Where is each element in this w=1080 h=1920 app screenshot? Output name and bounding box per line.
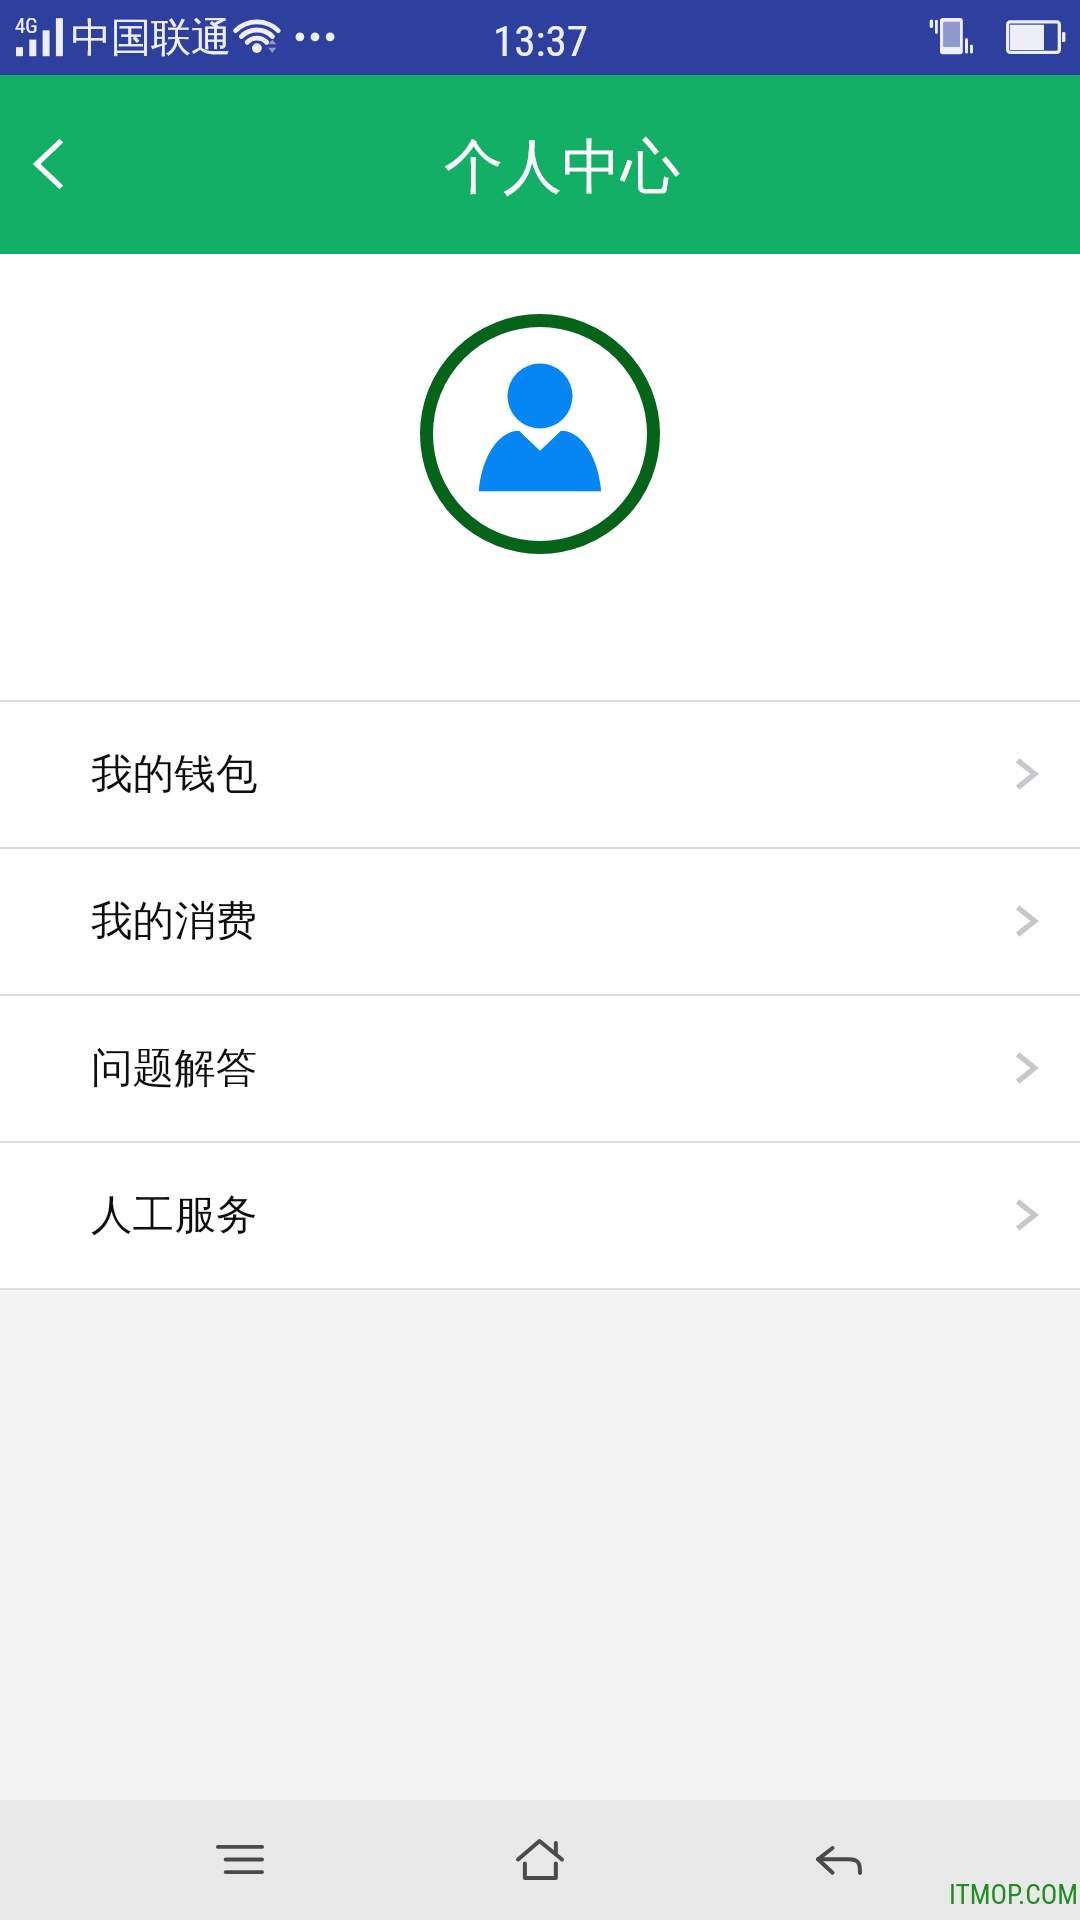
button[interactable]: 我的消费 <box>0 849 1080 994</box>
staticText: 我的消费 <box>91 895 258 947</box>
staticText: 个人中心 <box>444 130 680 204</box>
staticText: 问题解答 <box>91 1042 258 1094</box>
button[interactable]: Home <box>480 1800 600 1920</box>
button[interactable]: 问题解答 <box>0 996 1080 1141</box>
staticText: ITMOP.COM <box>949 1878 1079 1910</box>
button[interactable]: Back <box>780 1800 900 1920</box>
staticText: 4G <box>15 14 38 39</box>
button[interactable]: Menu <box>180 1800 300 1920</box>
button[interactable]: Back <box>0 105 100 225</box>
staticText: 我的钱包 <box>91 748 258 800</box>
button[interactable]: 人工服务 <box>0 1143 1080 1288</box>
staticText: 中国联通 <box>71 12 231 62</box>
staticText: 人工服务 <box>91 1189 258 1241</box>
staticText: 13:37 <box>493 16 588 66</box>
button[interactable]: 我的钱包 <box>0 702 1080 847</box>
